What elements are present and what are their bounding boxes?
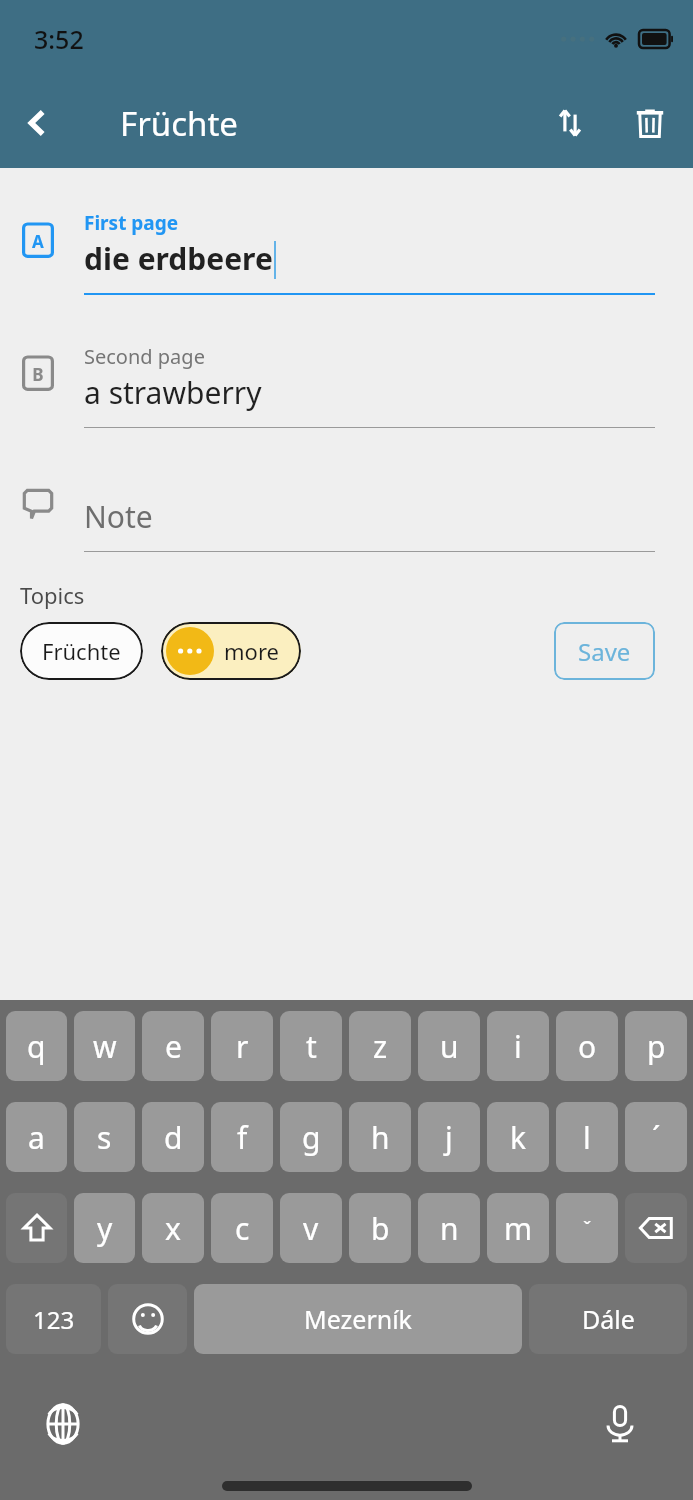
- staticText: more: [224, 636, 279, 666]
- staticText: z: [373, 1026, 388, 1067]
- staticText: l: [583, 1117, 591, 1158]
- staticText: i: [514, 1026, 522, 1067]
- button[interactable]: m: [487, 1193, 549, 1263]
- staticText: Topics: [20, 580, 85, 610]
- button[interactable]: more: [161, 622, 301, 680]
- button[interactable]: r: [211, 1011, 273, 1081]
- staticText: n: [440, 1208, 459, 1249]
- staticText: Second page: [84, 343, 205, 370]
- staticText: x: [165, 1208, 181, 1249]
- button[interactable]: Sort: [539, 92, 601, 154]
- button[interactable]: Dále: [529, 1284, 687, 1354]
- button[interactable]: Delete: [619, 92, 681, 154]
- button[interactable]: Mezerník: [194, 1284, 522, 1354]
- button[interactable]: f: [211, 1102, 273, 1172]
- staticText: d: [164, 1117, 183, 1158]
- staticText: f: [237, 1117, 248, 1158]
- staticText: t: [306, 1026, 317, 1067]
- staticText: 123: [33, 1303, 75, 1336]
- other: First page: [20, 210, 84, 274]
- button[interactable]: Backspace: [625, 1193, 687, 1263]
- button[interactable]: Shift: [6, 1193, 67, 1263]
- staticText: Früchte: [120, 101, 238, 146]
- staticText: Note: [84, 496, 153, 537]
- button[interactable]: x: [142, 1193, 204, 1263]
- button[interactable]: b: [349, 1193, 411, 1263]
- other: Note: [20, 472, 84, 536]
- staticText: y: [97, 1208, 113, 1249]
- staticText: A: [32, 230, 44, 253]
- staticText: g: [302, 1117, 321, 1158]
- staticText: 3:52: [34, 22, 84, 56]
- staticText: c: [235, 1208, 250, 1249]
- staticText: s: [97, 1117, 112, 1158]
- staticText: e: [165, 1026, 182, 1067]
- button[interactable]: z: [349, 1011, 411, 1081]
- button[interactable]: c: [211, 1193, 273, 1263]
- staticText: v: [303, 1208, 319, 1249]
- staticText: q: [27, 1026, 46, 1067]
- staticText: Mezerník: [304, 1302, 412, 1336]
- staticText: h: [371, 1117, 390, 1158]
- button[interactable]: e: [142, 1011, 204, 1081]
- staticText: o: [578, 1026, 597, 1067]
- staticText: p: [647, 1026, 666, 1067]
- button[interactable]: o: [556, 1011, 618, 1081]
- button[interactable]: Früchte: [20, 622, 143, 680]
- staticText: k: [510, 1117, 527, 1158]
- button[interactable]: q: [6, 1011, 67, 1081]
- button[interactable]: s: [74, 1102, 135, 1172]
- staticText: r: [236, 1026, 249, 1067]
- button[interactable]: i: [487, 1011, 549, 1081]
- button[interactable]: Note: [84, 472, 655, 552]
- button[interactable]: j: [418, 1102, 480, 1172]
- button[interactable]: n: [418, 1193, 480, 1263]
- staticText: ˇ: [583, 1215, 592, 1242]
- other: Second page: [20, 343, 84, 407]
- button[interactable]: w: [74, 1011, 135, 1081]
- staticText: Save: [578, 635, 631, 668]
- button[interactable]: h: [349, 1102, 411, 1172]
- button[interactable]: l: [556, 1102, 618, 1172]
- staticText: Dále: [582, 1302, 635, 1336]
- staticText: a strawberry: [84, 372, 262, 413]
- staticText: j: [445, 1117, 453, 1158]
- button[interactable]: Emoji: [108, 1284, 187, 1354]
- button[interactable]: v: [280, 1193, 342, 1263]
- button[interactable]: Voice input: [589, 1393, 651, 1455]
- button[interactable]: Change keyboard: [32, 1393, 94, 1455]
- staticText: w: [93, 1026, 117, 1067]
- button[interactable]: a: [6, 1102, 67, 1172]
- button[interactable]: k: [487, 1102, 549, 1172]
- button[interactable]: y: [74, 1193, 135, 1263]
- staticText: m: [504, 1208, 533, 1249]
- staticText: a: [28, 1117, 45, 1158]
- button[interactable]: ˇ: [556, 1193, 618, 1263]
- staticText: ´: [652, 1117, 661, 1158]
- button[interactable]: g: [280, 1102, 342, 1172]
- button[interactable]: t: [280, 1011, 342, 1081]
- staticText: Früchte: [42, 636, 121, 666]
- button[interactable]: Second page: [84, 343, 655, 428]
- button[interactable]: Save: [554, 622, 655, 680]
- button[interactable]: Back: [10, 95, 66, 151]
- staticText: First page: [84, 210, 179, 236]
- button[interactable]: d: [142, 1102, 204, 1172]
- button[interactable]: 123: [6, 1284, 101, 1354]
- staticText: B: [32, 363, 44, 386]
- button[interactable]: ´: [625, 1102, 687, 1172]
- staticText: u: [440, 1026, 459, 1067]
- button[interactable]: p: [625, 1011, 687, 1081]
- button[interactable]: First page: [84, 210, 655, 295]
- staticText: b: [371, 1208, 390, 1249]
- staticText: die erdbeere: [84, 238, 273, 279]
- button[interactable]: u: [418, 1011, 480, 1081]
